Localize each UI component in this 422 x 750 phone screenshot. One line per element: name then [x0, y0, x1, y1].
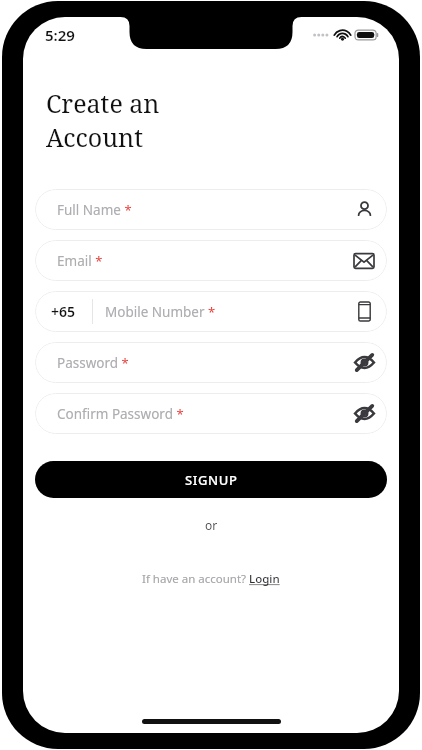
staticText: If have an account? Login [142, 571, 280, 587]
staticText: Email * [57, 252, 103, 270]
staticText: Create an [46, 86, 160, 120]
button[interactable]: SIGNUP [35, 461, 387, 498]
other: Show confirm password [341, 393, 387, 434]
button[interactable]: +65 [35, 291, 387, 332]
button[interactable]: Full Name * [35, 189, 387, 230]
staticText: Confirm Password * [57, 405, 184, 423]
staticText: Password * [57, 354, 129, 372]
staticText: Full Name * [57, 201, 132, 219]
staticText: Mobile Number * [105, 303, 216, 321]
staticText: Account [46, 120, 143, 154]
button[interactable]: Email * [35, 240, 387, 281]
button[interactable]: Confirm Password * [35, 393, 387, 434]
button[interactable]: If have an account? Login [136, 567, 286, 591]
staticText: SIGNUP [185, 471, 238, 489]
other: Email [341, 240, 387, 281]
button[interactable]: Password * [35, 342, 387, 383]
other: Full name [341, 189, 387, 230]
other: Show password [341, 342, 387, 383]
staticText: 5:29 [45, 25, 75, 45]
staticText: +65 [51, 302, 76, 321]
staticText: or [205, 517, 218, 533]
